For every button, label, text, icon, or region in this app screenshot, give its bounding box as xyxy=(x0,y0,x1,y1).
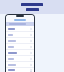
button[interactable] xyxy=(6,17,34,22)
button[interactable]: Open setting xyxy=(6,50,34,55)
button[interactable]: Open setting xyxy=(6,38,34,43)
button[interactable]: Open setting xyxy=(6,56,34,61)
button[interactable]: Open setting xyxy=(6,68,34,72)
button[interactable]: Open setting xyxy=(6,32,34,37)
button[interactable]: Open setting xyxy=(6,62,34,67)
button[interactable]: Open setting xyxy=(6,44,34,49)
button[interactable]: Open setting xyxy=(6,26,34,31)
